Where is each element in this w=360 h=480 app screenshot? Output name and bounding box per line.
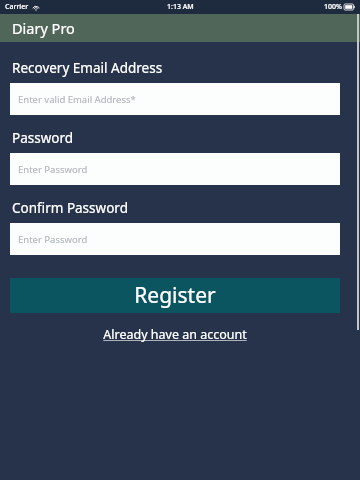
staticText: 1:13 AM bbox=[167, 2, 194, 12]
staticText: Enter Password bbox=[18, 233, 88, 246]
staticText: Enter valid Email Address* bbox=[18, 93, 136, 106]
staticText: Diary Pro bbox=[12, 18, 75, 38]
staticText: Confirm Password bbox=[12, 199, 128, 217]
staticText: Carrier bbox=[5, 2, 29, 12]
staticText: Register bbox=[134, 281, 216, 310]
button[interactable]: Already have an account bbox=[99, 324, 251, 345]
button[interactable]: Enter valid Email Address* bbox=[10, 83, 340, 115]
button[interactable]: Enter Password bbox=[10, 223, 340, 255]
staticText: Recovery Email Address bbox=[12, 59, 163, 77]
staticText: 100% bbox=[324, 2, 342, 12]
button[interactable]: Enter Password bbox=[10, 153, 340, 185]
staticText: Password bbox=[12, 129, 74, 147]
staticText: Already have an account bbox=[103, 326, 247, 343]
staticText: Enter Password bbox=[18, 163, 88, 176]
button[interactable]: Register bbox=[10, 278, 340, 313]
